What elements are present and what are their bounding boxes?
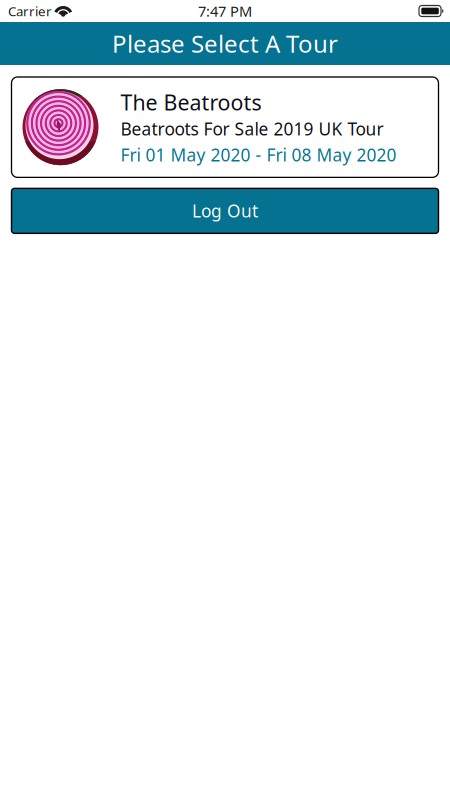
staticText: Carrier [8, 2, 52, 20]
staticText: Fri 01 May 2020 - Fri 08 May 2020 [120, 143, 396, 166]
staticText: Beatroots For Sale 2019 UK Tour [120, 117, 383, 140]
staticText: Log Out [192, 199, 258, 222]
staticText: The Beatroots [120, 88, 261, 116]
button[interactable]: Log Out [11, 188, 438, 233]
staticText: 7:47 PM [198, 1, 252, 21]
staticText: Please Select A Tour [112, 28, 338, 59]
button[interactable]: The Beatroots [11, 77, 438, 177]
